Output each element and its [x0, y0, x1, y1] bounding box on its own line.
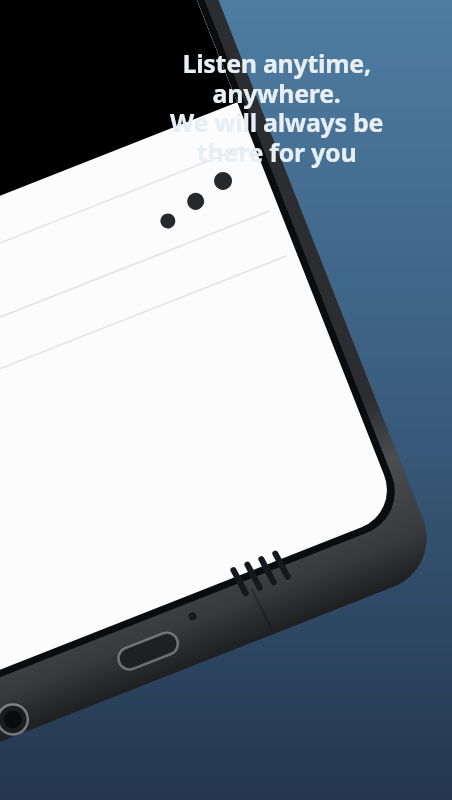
button[interactable]: Phone showing the app: [0, 0, 452, 800]
